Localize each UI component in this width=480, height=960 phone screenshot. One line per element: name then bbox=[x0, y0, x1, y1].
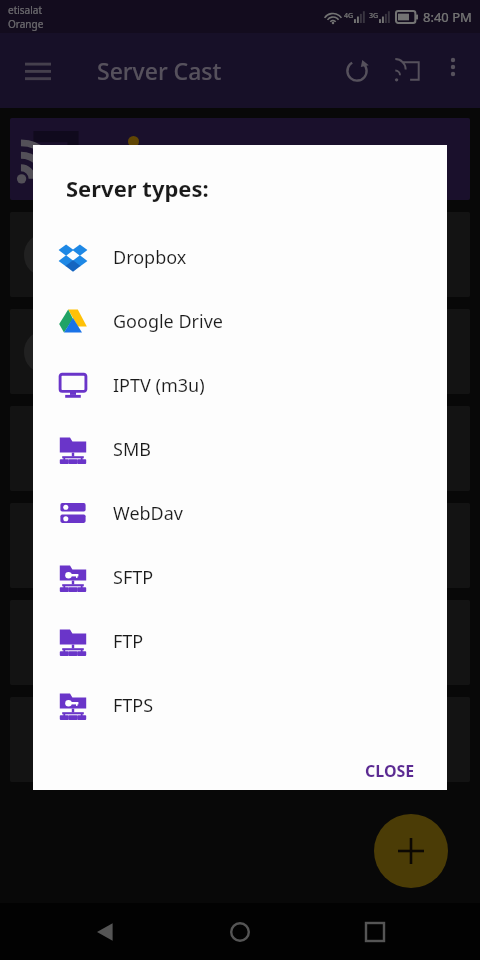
button[interactable]: Home bbox=[210, 903, 270, 960]
button[interactable] bbox=[10, 600, 470, 685]
staticText: SMB bbox=[113, 437, 151, 462]
button[interactable]: FTP bbox=[33, 609, 447, 673]
button[interactable]: Add server bbox=[374, 814, 448, 888]
staticText: Orange bbox=[8, 17, 44, 31]
staticText: Server Cast bbox=[97, 55, 222, 86]
button[interactable]: Dropbox bbox=[33, 225, 447, 289]
staticText: Server types: bbox=[66, 173, 209, 203]
button[interactable]: FTPS bbox=[33, 673, 447, 737]
button[interactable]: Back bbox=[75, 903, 135, 960]
button[interactable] bbox=[10, 697, 470, 782]
button[interactable]: CLOSE bbox=[351, 751, 429, 790]
staticText: 8:40 PM bbox=[423, 8, 472, 26]
button[interactable]: SFTP bbox=[33, 545, 447, 609]
staticText: 3G bbox=[369, 11, 379, 21]
staticText: WebDav bbox=[113, 501, 183, 526]
button[interactable]: Google Drive bbox=[33, 289, 447, 353]
staticText: Google Drive bbox=[113, 309, 223, 334]
button[interactable]: Menu bbox=[14, 47, 62, 95]
staticText: SFTP bbox=[113, 565, 154, 590]
button[interactable]: IPTV (m3u) bbox=[33, 353, 447, 417]
button[interactable]: Refresh bbox=[332, 46, 382, 96]
staticText: 4G bbox=[344, 11, 354, 21]
button[interactable] bbox=[10, 309, 470, 394]
staticText: Dropbox bbox=[113, 245, 187, 270]
button[interactable] bbox=[10, 118, 470, 200]
staticText: IPTV (m3u) bbox=[113, 373, 205, 398]
button[interactable]: WebDav bbox=[33, 481, 447, 545]
button[interactable]: More options bbox=[432, 46, 474, 88]
staticText: CLOSE bbox=[365, 760, 415, 781]
button[interactable] bbox=[10, 503, 470, 588]
button[interactable]: SMB bbox=[33, 417, 447, 481]
button[interactable] bbox=[10, 212, 470, 297]
button[interactable]: Cast bbox=[382, 46, 432, 96]
staticText: FTPS bbox=[113, 693, 154, 718]
staticText: FTP bbox=[113, 629, 144, 654]
staticText: etisalat bbox=[8, 3, 43, 17]
button[interactable] bbox=[10, 406, 470, 491]
button[interactable]: Recents bbox=[345, 903, 405, 960]
